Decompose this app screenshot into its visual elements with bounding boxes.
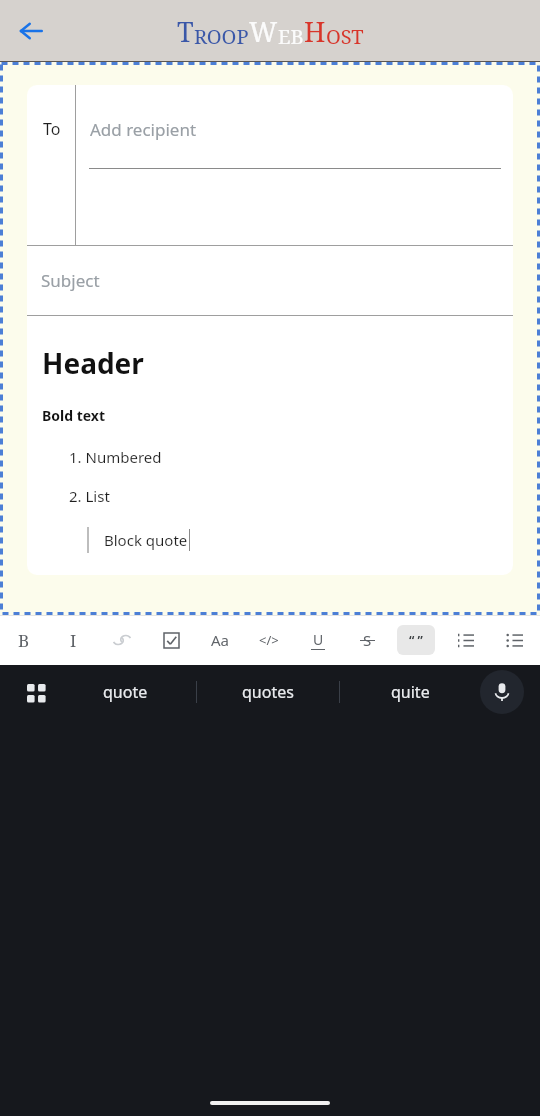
staticText: quote [103,681,148,703]
staticText: I [70,629,77,652]
staticText: OST [326,23,364,50]
button[interactable]: Voice input [480,670,524,714]
button[interactable]: Quote [396,620,436,660]
staticText: Add recipient [90,118,197,141]
button[interactable]: Bold [4,620,44,660]
button[interactable]: quote [70,671,180,713]
button[interactable]: Keyboard options [22,679,50,707]
button[interactable]: Subject [27,246,513,315]
staticText: Header [42,344,144,382]
staticText: T [177,13,194,50]
staticText: 1. Numbered [69,447,162,467]
button[interactable]: Underline [298,620,338,660]
staticText: S [363,630,372,650]
button[interactable]: Link [102,620,142,660]
staticText: EB [278,23,304,50]
button[interactable]: Code [249,620,289,660]
button[interactable]: Italic [53,620,93,660]
button[interactable]: To [27,85,513,245]
staticText: B [18,629,30,652]
button[interactable]: Bulleted list [494,620,534,660]
button[interactable]: Strikethrough [347,620,387,660]
button[interactable]: Text style [200,620,240,660]
staticText: ROOP [194,23,249,50]
button[interactable]: quotes [213,671,323,713]
staticText: Block quote [104,530,188,550]
staticText: Subject [41,269,100,292]
button[interactable]: quite [355,671,465,713]
staticText: </> [259,631,279,649]
staticText: quotes [242,681,294,703]
staticText: Aa [211,630,230,650]
staticText: U [313,630,324,649]
staticText: W [249,13,278,50]
staticText: 2. List [69,486,110,506]
button[interactable]: Header [27,316,513,575]
staticText: Bold text [42,406,106,425]
button[interactable]: Checklist [151,620,191,660]
button[interactable]: Numbered list [445,620,485,660]
staticText: H [304,13,326,50]
staticText: To [43,118,61,140]
staticText: quite [391,681,430,703]
button[interactable]: Back [8,8,54,54]
staticText: “ ” [409,632,423,648]
